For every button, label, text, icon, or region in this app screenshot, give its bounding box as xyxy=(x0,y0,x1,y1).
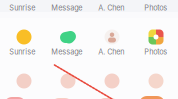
staticText: Photos xyxy=(144,47,167,56)
button[interactable]: Item xyxy=(51,98,73,99)
button[interactable]: Item xyxy=(97,98,119,99)
button[interactable]: Message xyxy=(44,3,89,12)
staticText: Photos xyxy=(144,3,167,12)
button[interactable]: Message xyxy=(44,47,89,56)
button[interactable]: Photos xyxy=(133,47,178,56)
staticText: A. Chen xyxy=(98,47,124,56)
button[interactable]: Photos xyxy=(148,29,163,44)
staticText: Message xyxy=(51,47,82,56)
button[interactable]: Messages xyxy=(59,30,76,43)
staticText: Sunrise xyxy=(9,47,35,56)
button[interactable]: Item xyxy=(139,96,165,99)
button[interactable]: A. Chen xyxy=(89,47,133,56)
staticText: A. Chen xyxy=(98,3,124,12)
button[interactable]: A. Chen xyxy=(89,3,133,12)
staticText: Sunrise xyxy=(9,3,35,12)
button[interactable]: Item xyxy=(148,73,163,88)
button[interactable]: Item xyxy=(104,73,119,88)
staticText: Message xyxy=(51,3,82,12)
button[interactable]: Item xyxy=(4,97,26,99)
button[interactable]: Sunrise xyxy=(16,29,31,44)
button[interactable]: Item xyxy=(16,73,31,88)
button[interactable]: Photos xyxy=(133,3,178,12)
button[interactable]: Sunrise xyxy=(0,3,44,12)
button[interactable]: Sunrise xyxy=(0,47,44,56)
button[interactable]: Item xyxy=(60,73,75,88)
button[interactable]: Contact xyxy=(104,29,119,44)
